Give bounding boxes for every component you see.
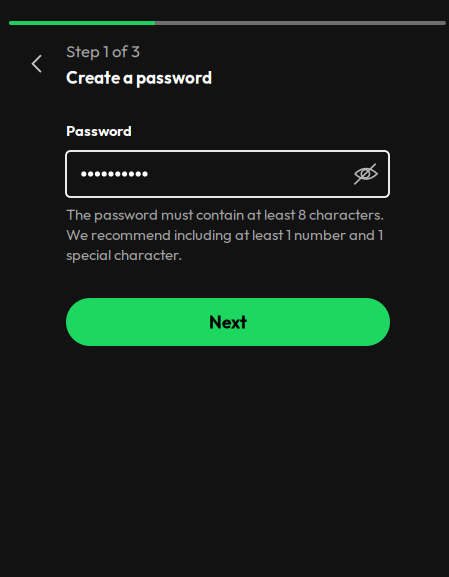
button[interactable]: Back xyxy=(21,43,53,84)
staticText: Password xyxy=(66,121,132,140)
staticText: The password must contain at least 8 cha… xyxy=(66,205,384,264)
button[interactable]: Next xyxy=(66,298,390,346)
staticText: Create a password xyxy=(66,67,212,88)
staticText: Next xyxy=(209,311,247,333)
button[interactable]: Show password xyxy=(349,157,383,191)
staticText: Step 1 of 3 xyxy=(66,40,140,61)
